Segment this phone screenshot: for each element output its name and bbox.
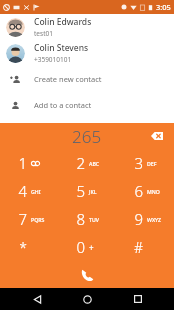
staticText: TUV xyxy=(89,216,99,223)
button[interactable]: Add to a contact xyxy=(0,92,174,118)
staticText: GHI xyxy=(31,188,41,195)
staticText: DEF xyxy=(147,160,157,167)
button[interactable]: Colin Stevens xyxy=(0,40,174,66)
staticText: 3 xyxy=(134,153,143,173)
button[interactable]: 5 xyxy=(58,177,116,205)
button[interactable]: 7 xyxy=(0,205,58,233)
button[interactable]: 0 xyxy=(58,233,116,261)
staticText: 5 xyxy=(76,181,85,201)
button[interactable]: 6 xyxy=(116,177,174,205)
button[interactable]: Recent apps xyxy=(124,288,152,310)
staticText: Colin Edwards xyxy=(34,16,92,28)
staticText: +359010101 xyxy=(34,55,72,64)
button[interactable]: Create new contact xyxy=(0,66,174,92)
staticText: * xyxy=(19,238,27,257)
button[interactable]: 2 xyxy=(58,149,116,177)
button[interactable]: # xyxy=(116,233,174,261)
staticText: 0 xyxy=(76,237,85,257)
button[interactable]: Colin Edwards xyxy=(0,14,174,40)
button[interactable]: 9 xyxy=(116,205,174,233)
button[interactable]: Backspace xyxy=(148,127,166,145)
staticText: 2 xyxy=(76,153,85,173)
button[interactable]: 4 xyxy=(0,177,58,205)
staticText: 265 xyxy=(72,125,102,148)
staticText: 3:05 xyxy=(156,2,171,12)
staticText: Add to a contact xyxy=(34,100,92,110)
staticText: 8 xyxy=(76,209,85,229)
staticText: WXYZ xyxy=(147,216,162,223)
staticText: PQRS xyxy=(31,216,45,223)
button[interactable]: Home xyxy=(73,288,101,310)
staticText: 1 xyxy=(18,153,27,173)
staticText: Colin Stevens xyxy=(34,42,89,54)
staticText: Create new contact xyxy=(34,74,102,84)
staticText: 9 xyxy=(134,209,143,229)
staticText: # xyxy=(133,238,143,257)
staticText: 6 xyxy=(134,181,143,201)
button[interactable]: 3 xyxy=(116,149,174,177)
staticText: JKL xyxy=(89,188,97,195)
button[interactable]: * xyxy=(0,233,58,261)
button[interactable]: Back xyxy=(23,288,51,310)
staticText: test01 xyxy=(34,29,53,38)
staticText: + xyxy=(89,242,94,253)
staticText: MNO xyxy=(147,188,160,195)
button[interactable]: Call xyxy=(0,261,174,288)
staticText: 7 xyxy=(18,209,27,229)
button[interactable]: 1 xyxy=(0,149,58,177)
staticText: 4 xyxy=(18,181,27,201)
staticText: ABC xyxy=(89,160,100,167)
button[interactable]: 8 xyxy=(58,205,116,233)
